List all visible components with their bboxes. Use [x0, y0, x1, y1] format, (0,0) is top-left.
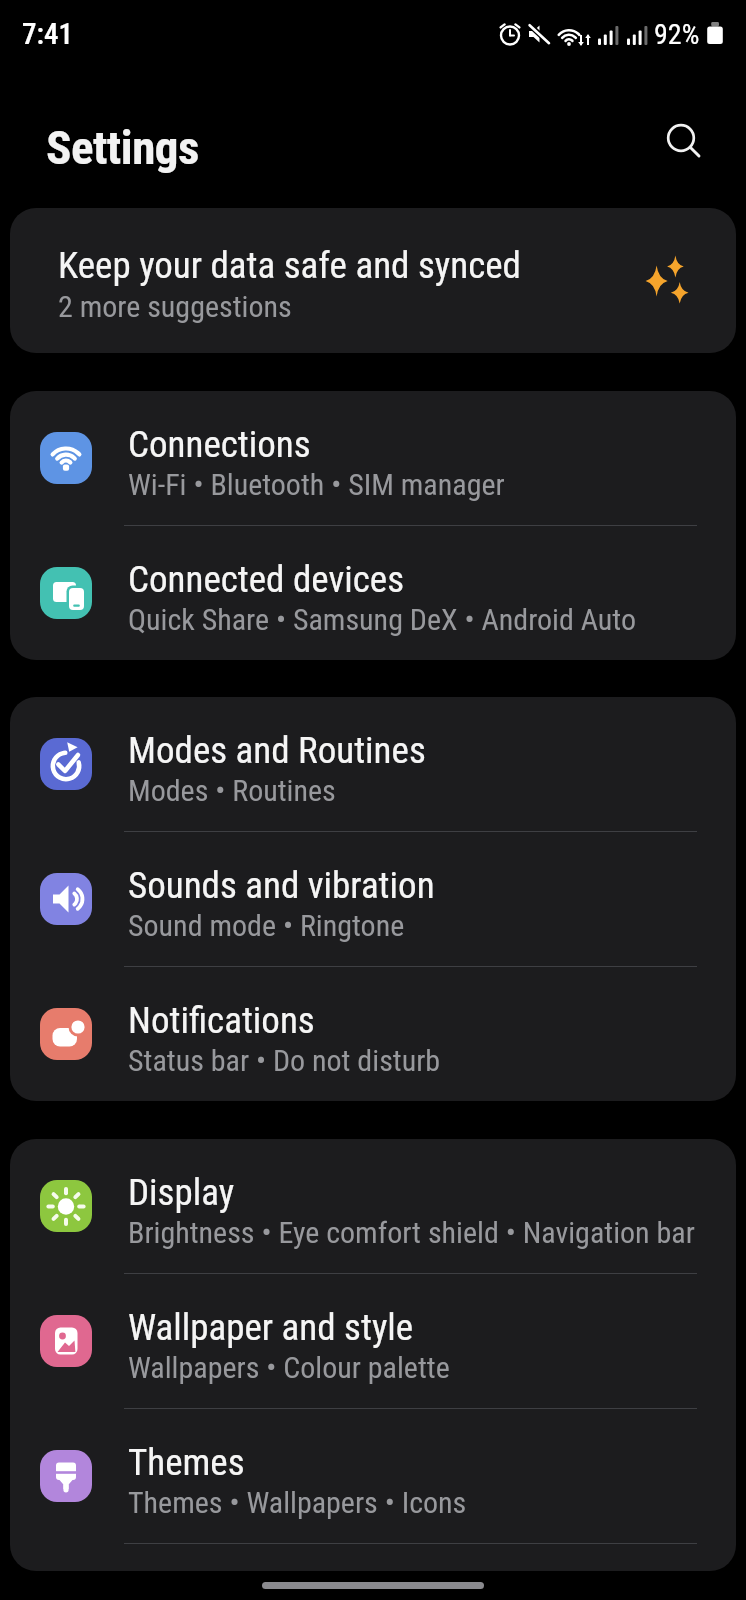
staticText: Wallpapers • Colour palette	[128, 1350, 450, 1385]
button[interactable]: Wallpaper and style	[10, 1274, 736, 1408]
staticText: 2 more suggestions	[58, 289, 292, 324]
staticText: Status bar • Do not disturb	[128, 1043, 441, 1078]
button[interactable]: Connections	[10, 391, 736, 525]
staticText: Connections	[128, 423, 311, 466]
staticText: Wi-Fi • Bluetooth • SIM manager	[128, 467, 505, 502]
button[interactable]	[658, 114, 706, 162]
staticText: Sound mode • Ringtone	[128, 908, 405, 943]
staticText: Modes • Routines	[128, 773, 336, 808]
staticText: Connected devices	[128, 558, 405, 601]
button[interactable]: Sounds and vibration	[10, 832, 736, 966]
staticText: Wallpaper and style	[128, 1306, 414, 1349]
button[interactable]: Connected devices	[10, 526, 736, 660]
staticText: Brightness • Eye comfort shield • Naviga…	[128, 1215, 695, 1250]
staticText: Sounds and vibration	[128, 864, 435, 907]
button[interactable]: Keep your data safe and synced	[10, 208, 736, 353]
staticText: Notifications	[128, 999, 315, 1042]
staticText: 92%	[654, 18, 700, 51]
staticText: 7:41	[22, 17, 74, 51]
staticText: Modes and Routines	[128, 729, 426, 772]
staticText: Themes • Wallpapers • Icons	[128, 1485, 467, 1520]
button[interactable]: Display	[10, 1139, 736, 1273]
button[interactable]: Modes and Routines	[10, 697, 736, 831]
button[interactable]: Notifications	[10, 967, 736, 1101]
staticText: Themes	[128, 1441, 245, 1484]
staticText: Keep your data safe and synced	[58, 244, 521, 287]
staticText: Quick Share • Samsung DeX • Android Auto	[128, 602, 636, 637]
staticText: Settings	[46, 120, 199, 175]
staticText: Display	[128, 1171, 235, 1214]
button[interactable]: Themes	[10, 1409, 736, 1543]
